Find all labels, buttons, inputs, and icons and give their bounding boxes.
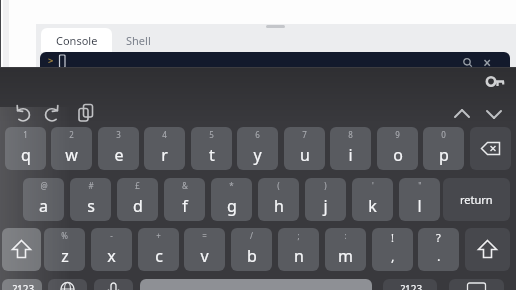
- staticText: d: [133, 195, 143, 217]
- staticText: return: [460, 192, 493, 207]
- staticText: ': [372, 180, 374, 191]
- staticText: w: [65, 144, 78, 166]
- staticText: u: [300, 144, 310, 166]
- staticText: c: [155, 245, 163, 267]
- staticText: 9: [395, 129, 400, 140]
- staticText: 3: [116, 129, 121, 140]
- staticText: >: [48, 54, 54, 67]
- button[interactable]: [94, 279, 133, 290]
- staticText: @: [40, 180, 48, 191]
- staticText: r: [161, 144, 168, 166]
- staticText: #: [88, 180, 94, 191]
- button[interactable]: ?: [418, 228, 459, 271]
- staticText: g: [227, 195, 237, 217]
- button[interactable]: 4: [144, 127, 185, 170]
- button[interactable]: [2, 228, 41, 271]
- staticText: .?123: [10, 282, 35, 290]
- staticText: k: [368, 195, 377, 217]
- button[interactable]: %: [44, 228, 85, 271]
- staticText: 8: [348, 129, 353, 140]
- staticText: -: [110, 230, 113, 241]
- staticText: 5: [209, 129, 214, 140]
- staticText: /: [250, 230, 253, 241]
- staticText: Console: [56, 33, 98, 48]
- staticText: (: [277, 180, 280, 191]
- staticText: +: [156, 230, 161, 241]
- button[interactable]: 9: [377, 127, 418, 170]
- button[interactable]: /: [231, 228, 272, 271]
- staticText: x: [107, 245, 116, 267]
- staticText: 0: [441, 129, 446, 140]
- staticText: 2: [69, 129, 74, 140]
- staticText: ": [418, 180, 422, 191]
- button[interactable]: Shell: [112, 28, 164, 52]
- button[interactable]: @: [23, 178, 64, 221]
- button[interactable]: 1: [5, 127, 46, 170]
- staticText: e: [114, 144, 124, 166]
- staticText: a: [39, 195, 48, 217]
- button[interactable]: 5: [191, 127, 232, 170]
- staticText: p: [439, 144, 449, 166]
- staticText: !: [391, 230, 394, 245]
- staticText: 4: [162, 129, 167, 140]
- staticText: *: [229, 180, 234, 191]
- staticText: n: [294, 245, 304, 267]
- staticText: z: [61, 245, 69, 267]
- button[interactable]: *: [211, 178, 252, 221]
- staticText: i: [348, 144, 353, 166]
- button[interactable]: #: [70, 178, 111, 221]
- staticText: .?123: [398, 282, 423, 290]
- button[interactable]: 7: [284, 127, 325, 170]
- staticText: ?: [436, 230, 441, 245]
- staticText: 1: [23, 129, 28, 140]
- button[interactable]: 3: [98, 127, 139, 170]
- button[interactable]: &: [164, 178, 205, 221]
- staticText: h: [274, 195, 284, 217]
- button[interactable]: .?123: [383, 279, 437, 290]
- staticText: s: [87, 195, 95, 217]
- staticText: %: [61, 230, 68, 241]
- staticText: Shell: [126, 33, 151, 48]
- staticText: ): [324, 180, 327, 191]
- staticText: l: [417, 195, 422, 217]
- button[interactable]: ;: [278, 228, 319, 271]
- button[interactable]: ): [305, 178, 346, 221]
- staticText: .: [437, 247, 441, 265]
- button[interactable]: £: [117, 178, 158, 221]
- button[interactable]: +: [138, 228, 179, 271]
- staticText: =: [202, 230, 207, 241]
- button[interactable]: ": [399, 178, 440, 221]
- button[interactable]: 0: [423, 127, 464, 170]
- staticText: b: [247, 245, 257, 267]
- button[interactable]: .?123: [2, 279, 42, 290]
- button[interactable]: !: [372, 228, 413, 271]
- staticText: j: [323, 195, 328, 217]
- button[interactable]: ': [352, 178, 393, 221]
- button[interactable]: [449, 279, 504, 290]
- button[interactable]: Console: [41, 28, 112, 52]
- staticText: :: [344, 230, 347, 241]
- staticText: 6: [255, 129, 260, 140]
- button[interactable]: -: [91, 228, 132, 271]
- staticText: f: [182, 195, 188, 217]
- button[interactable]: 2: [51, 127, 92, 170]
- staticText: £: [135, 180, 140, 191]
- button[interactable]: 6: [237, 127, 278, 170]
- staticText: 7: [302, 129, 307, 140]
- button[interactable]: 8: [330, 127, 371, 170]
- button[interactable]: (: [258, 178, 299, 221]
- button[interactable]: =: [184, 228, 225, 271]
- staticText: y: [253, 144, 262, 166]
- button[interactable]: :: [325, 228, 366, 271]
- staticText: q: [21, 144, 31, 166]
- button[interactable]: return: [443, 178, 510, 221]
- staticText: v: [200, 245, 209, 267]
- staticText: o: [393, 144, 403, 166]
- staticText: m: [338, 245, 353, 267]
- button[interactable]: [48, 279, 87, 290]
- staticText: &: [182, 180, 188, 191]
- button[interactable]: [465, 228, 510, 271]
- button[interactable]: [140, 279, 372, 290]
- button[interactable]: [470, 127, 511, 170]
- staticText: t: [209, 144, 215, 166]
